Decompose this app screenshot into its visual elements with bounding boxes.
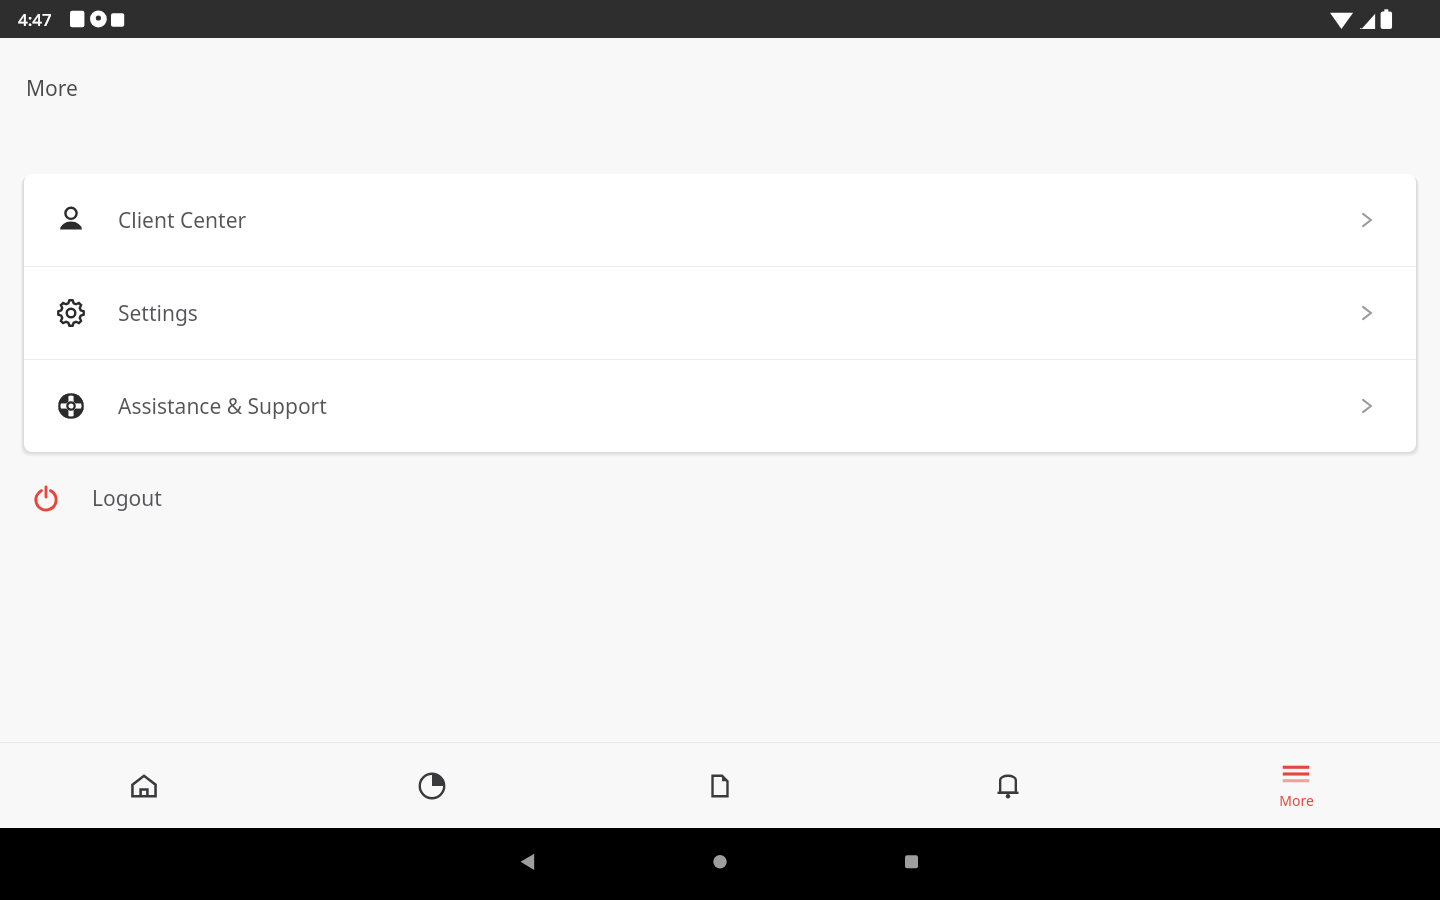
staticText: More: [1279, 791, 1314, 810]
staticText: Assistance & Support: [118, 392, 327, 421]
button[interactable]: Notifications: [864, 743, 1152, 828]
button[interactable]: More: [1152, 743, 1440, 828]
button[interactable]: Client Center: [24, 174, 1416, 266]
button[interactable]: Settings: [24, 267, 1416, 359]
staticText: 4:47: [18, 8, 52, 31]
staticText: Client Center: [118, 206, 247, 235]
button[interactable]: Documents: [576, 743, 864, 828]
button[interactable]: Logout: [0, 452, 1440, 544]
staticText: More: [26, 74, 78, 103]
button[interactable]: Assistance & Support: [24, 360, 1416, 452]
button[interactable]: Home: [0, 743, 288, 828]
button[interactable]: Reports: [288, 743, 576, 828]
staticText: Logout: [92, 484, 162, 513]
staticText: Settings: [118, 299, 198, 328]
